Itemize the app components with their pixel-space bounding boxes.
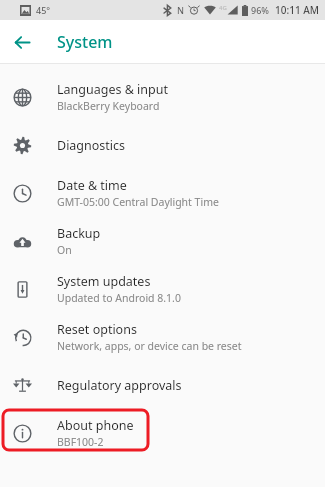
staticText: 4G bbox=[219, 4, 227, 12]
button[interactable]: System updates bbox=[0, 265, 325, 313]
button[interactable]: About phone bbox=[0, 409, 325, 457]
button[interactable]: Diagnostics bbox=[0, 121, 325, 169]
staticText: GMT-05:00 Central Daylight Time bbox=[57, 195, 219, 209]
staticText: BBF100-2 bbox=[57, 435, 104, 449]
staticText: About phone bbox=[57, 417, 134, 434]
staticText: Reset options bbox=[57, 321, 137, 338]
staticText: On bbox=[57, 243, 72, 257]
staticText: System bbox=[57, 31, 113, 53]
staticText: Date & time bbox=[57, 177, 127, 194]
staticText: 10:11 AM bbox=[275, 3, 319, 17]
staticText: System updates bbox=[57, 273, 151, 290]
staticText: Network, apps, or device can be reset bbox=[57, 339, 242, 353]
button[interactable]: Back bbox=[8, 28, 36, 56]
staticText: 45° bbox=[36, 4, 51, 16]
staticText: 96% bbox=[251, 4, 269, 16]
staticText: BlackBerry Keyboard bbox=[57, 99, 160, 113]
button[interactable]: Regulatory approvals bbox=[0, 361, 325, 409]
button[interactable]: Languages & input bbox=[0, 73, 325, 121]
staticText: Updated to Android 8.1.0 bbox=[57, 291, 181, 305]
staticText: Backup bbox=[57, 225, 101, 242]
button[interactable]: Backup bbox=[0, 217, 325, 265]
button[interactable]: Reset options bbox=[0, 313, 325, 361]
staticText: Languages & input bbox=[57, 81, 168, 98]
staticText: Regulatory approvals bbox=[57, 377, 182, 394]
staticText: Diagnostics bbox=[57, 137, 126, 154]
staticText: N bbox=[177, 4, 184, 16]
button[interactable]: Date & time bbox=[0, 169, 325, 217]
